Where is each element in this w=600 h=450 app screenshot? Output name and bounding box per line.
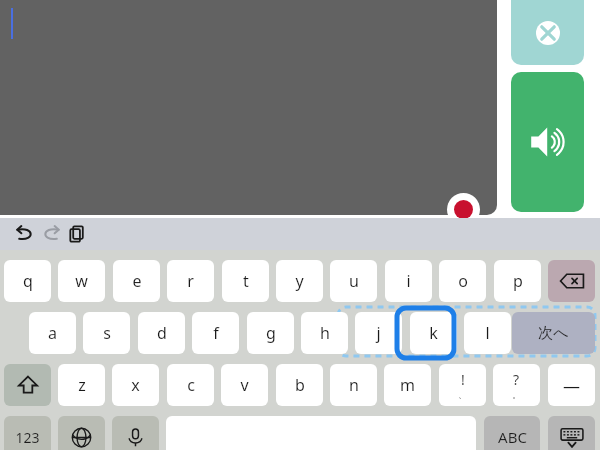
button[interactable]: l bbox=[464, 312, 511, 354]
button[interactable]: j bbox=[355, 312, 402, 354]
button[interactable]: Language bbox=[58, 416, 105, 450]
button[interactable]: s bbox=[83, 312, 130, 354]
staticText: q bbox=[23, 270, 33, 292]
button[interactable]: e bbox=[113, 260, 160, 302]
staticText: 次へ bbox=[538, 324, 569, 343]
button[interactable]: n bbox=[330, 364, 377, 406]
button[interactable]: Close bbox=[511, 0, 584, 65]
button[interactable]: c bbox=[167, 364, 214, 406]
button[interactable]: f bbox=[192, 312, 239, 354]
staticText: n bbox=[349, 374, 359, 396]
button[interactable] bbox=[548, 260, 595, 302]
staticText: k bbox=[429, 322, 438, 344]
button[interactable]: b bbox=[276, 364, 323, 406]
staticText: ! bbox=[461, 370, 465, 389]
button[interactable]: o bbox=[439, 260, 486, 302]
button[interactable]: ! bbox=[439, 364, 486, 406]
button[interactable]: p bbox=[494, 260, 541, 302]
staticText: m bbox=[400, 374, 415, 396]
staticText: c bbox=[187, 374, 195, 396]
staticText: e bbox=[132, 270, 142, 292]
staticText: x bbox=[131, 374, 140, 396]
staticText: 123 bbox=[15, 428, 40, 447]
button[interactable]: Copy bbox=[66, 222, 90, 246]
staticText: i bbox=[406, 270, 411, 292]
button[interactable] bbox=[0, 0, 497, 215]
staticText: b bbox=[295, 374, 305, 396]
button[interactable]: t bbox=[222, 260, 269, 302]
staticText: w bbox=[75, 270, 88, 292]
staticText: h bbox=[320, 322, 330, 344]
staticText: ― bbox=[563, 374, 580, 397]
button[interactable]: u bbox=[330, 260, 377, 302]
staticText: a bbox=[48, 322, 57, 344]
button[interactable]: g bbox=[247, 312, 294, 354]
button[interactable]: ABC bbox=[484, 416, 540, 450]
staticText: ? bbox=[513, 370, 520, 389]
staticText: j bbox=[376, 322, 381, 344]
button[interactable]: Undo bbox=[12, 222, 36, 246]
button[interactable]: k bbox=[410, 312, 457, 354]
staticText: f bbox=[213, 322, 219, 344]
button[interactable]: h bbox=[301, 312, 348, 354]
button[interactable]: ― bbox=[548, 364, 595, 406]
staticText: v bbox=[240, 374, 249, 396]
button[interactable]: d bbox=[138, 312, 185, 354]
button[interactable]: m bbox=[384, 364, 431, 406]
button[interactable]: Hide keyboard bbox=[548, 416, 595, 450]
button[interactable]: v bbox=[221, 364, 268, 406]
staticText: 。 bbox=[512, 389, 521, 400]
button[interactable]: y bbox=[276, 260, 323, 302]
button[interactable]: i bbox=[385, 260, 432, 302]
staticText: o bbox=[458, 270, 468, 292]
staticText: y bbox=[295, 270, 304, 292]
button[interactable]: z bbox=[58, 364, 105, 406]
staticText: z bbox=[78, 374, 86, 396]
button[interactable]: Speaker bbox=[511, 72, 584, 212]
button[interactable]: w bbox=[58, 260, 105, 302]
staticText: ABC bbox=[498, 427, 527, 447]
staticText: t bbox=[243, 270, 249, 292]
staticText: 、 bbox=[458, 389, 467, 400]
button[interactable]: Shift bbox=[4, 364, 51, 406]
button[interactable]: ? bbox=[493, 364, 540, 406]
staticText: p bbox=[513, 270, 523, 292]
button[interactable]: Record bbox=[447, 193, 480, 226]
staticText: u bbox=[349, 270, 359, 292]
button[interactable]: r bbox=[167, 260, 214, 302]
staticText: g bbox=[266, 322, 276, 344]
button[interactable]: Redo bbox=[40, 222, 64, 246]
button[interactable]: a bbox=[29, 312, 76, 354]
staticText: r bbox=[187, 270, 194, 292]
button[interactable]: q bbox=[4, 260, 51, 302]
button[interactable]: x bbox=[112, 364, 159, 406]
button[interactable]: 次へ bbox=[512, 312, 595, 354]
button[interactable]: 123 bbox=[4, 416, 51, 450]
button[interactable]: Voice input bbox=[112, 416, 159, 450]
staticText: d bbox=[157, 322, 167, 344]
staticText: s bbox=[103, 322, 111, 344]
staticText: l bbox=[485, 322, 490, 344]
